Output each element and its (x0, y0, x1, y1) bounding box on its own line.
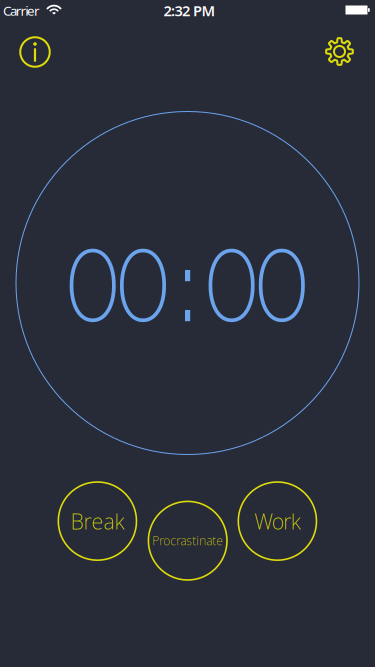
staticText: Carrier (3, 2, 40, 19)
staticText: Procrastinate (152, 533, 223, 549)
staticText: 2:32 PM (163, 1, 215, 20)
staticText: Break (70, 507, 124, 535)
staticText: Work (254, 507, 301, 535)
